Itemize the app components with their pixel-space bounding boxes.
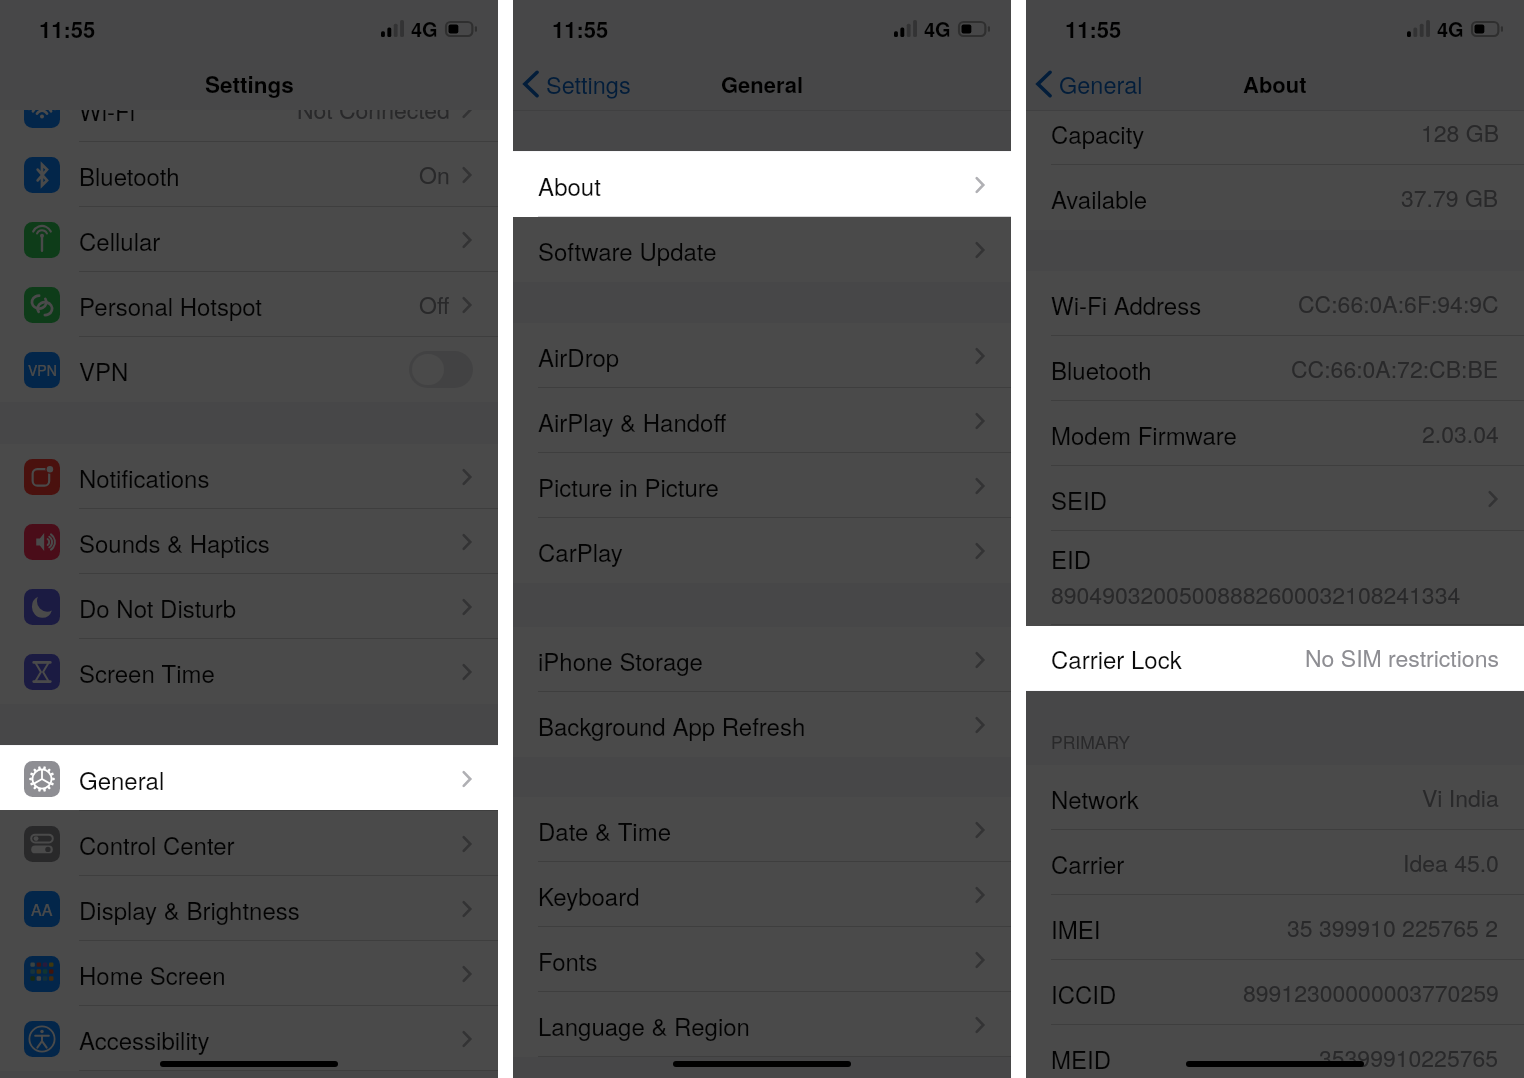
staticText: 37.79 GB [1401,181,1499,214]
staticText: Keyboard [538,878,640,912]
button[interactable]: Date & Time [513,797,1011,862]
staticText: Settings [205,68,294,100]
staticText: EID [1051,541,1092,575]
button[interactable]: SEID [1026,466,1524,531]
staticText: MEID [1051,1041,1111,1075]
staticText: 11:55 [1065,13,1122,45]
button[interactable]: Available [1026,165,1524,230]
staticText: Network [1051,781,1139,815]
staticText: Bluetooth [79,158,180,192]
staticText: Display & Brightness [79,892,300,926]
staticText: Picture in Picture [538,469,719,503]
staticText: CarPlay [538,534,623,568]
staticText: Settings [546,67,631,101]
button[interactable]: VPN [0,337,498,402]
button[interactable]: Capacity [1026,111,1524,165]
staticText: Modem Firmware [1051,417,1237,451]
staticText: 128 GB [1421,116,1499,149]
button[interactable]: Sounds & Haptics [0,509,498,574]
button[interactable]: ICCID [1026,960,1524,1025]
staticText: Do Not Disturb [79,590,237,624]
staticText: Carrier [1051,846,1125,880]
button[interactable]: AA [0,876,498,941]
staticText: CC:66:0A:72:CB:BE [1291,352,1499,385]
button[interactable]: Bluetooth [0,142,498,207]
staticText: AirDrop [538,339,620,373]
button[interactable]: IMEI [1026,895,1524,960]
button[interactable]: Settings [513,63,637,105]
staticText: 35 399910 225765 2 [1287,911,1499,944]
staticText: SEID [1051,482,1108,516]
staticText: Background App Refresh [538,708,806,742]
button[interactable]: iPhone Storage [513,627,1011,692]
button[interactable]: AirDrop [513,323,1011,388]
staticText: Vi India [1422,781,1499,814]
staticText: Home Screen [79,957,226,991]
staticText: Accessibility [79,1022,210,1056]
button[interactable]: Carrier [1026,830,1524,895]
button[interactable]: Personal Hotspot [0,272,498,337]
button[interactable]: Fonts [513,927,1011,992]
staticText: Bluetooth [1051,352,1152,386]
button[interactable]: Language & Region [513,992,1011,1057]
staticText: Not Connected [297,110,450,126]
button[interactable]: AirPlay & Handoff [513,388,1011,453]
staticText: Sounds & Haptics [79,525,270,559]
button[interactable]: Control Center [0,811,498,876]
button[interactable]: Software Update [513,217,1011,282]
staticText: Carrier Lock [1051,641,1182,675]
button[interactable]: Carrier Lock [1026,625,1524,690]
staticText: Software Update [538,233,717,267]
staticText: Idea 45.0 [1403,846,1499,879]
button[interactable]: Toggle VPN [409,351,473,388]
staticText: Screen Time [79,655,215,689]
staticText: Capacity [1051,116,1145,150]
staticText: No SIM restrictions [1305,641,1499,674]
button[interactable]: Home Screen [0,941,498,1006]
staticText: 4G [924,14,951,43]
button[interactable]: Notifications [0,444,498,509]
button[interactable]: Background App Refresh [513,692,1011,757]
button[interactable]: About [513,152,1011,217]
staticText: About [1243,68,1307,100]
staticText: 35399910225765 [1319,1041,1499,1074]
staticText: AirPlay & Handoff [538,404,727,438]
staticText: Wi-Fi Address [1051,287,1202,321]
staticText: Available [1051,181,1148,215]
staticText: VPN [28,360,57,380]
staticText: Control Center [79,827,235,861]
staticText: AA [31,898,53,921]
button[interactable]: General [0,746,498,811]
staticText: Wi-Fi [79,110,135,127]
staticText: ICCID [1051,976,1117,1010]
staticText: 89912300000003770259 [1243,976,1499,1009]
staticText: Off [419,288,450,321]
staticText: Date & Time [538,813,672,847]
staticText: 11:55 [552,13,609,45]
button[interactable]: EID [1026,531,1524,625]
button[interactable]: MEID [1026,1025,1524,1078]
staticText: General [1059,67,1143,101]
staticText: 2.03.04 [1422,417,1499,450]
staticText: 89049032005008882600032108241334 [1051,578,1461,611]
staticText: iPhone Storage [538,643,703,677]
button[interactable]: Do Not Disturb [0,574,498,639]
button[interactable]: Keyboard [513,862,1011,927]
button[interactable]: Accessibility [0,1006,498,1071]
staticText: VPN [79,353,129,387]
button[interactable]: Bluetooth [1026,336,1524,401]
button[interactable]: Network [1026,765,1524,830]
staticText: General [79,762,165,796]
staticText: Notifications [79,460,210,494]
button[interactable]: CarPlay [513,518,1011,583]
button[interactable]: Cellular [0,207,498,272]
button[interactable]: Wi-Fi Address [1026,271,1524,336]
staticText: 11:55 [39,13,96,45]
staticText: 4G [411,14,438,43]
button[interactable]: Picture in Picture [513,453,1011,518]
staticText: Language & Region [538,1008,750,1042]
button[interactable]: Modem Firmware [1026,401,1524,466]
button[interactable]: Screen Time [0,639,498,704]
button[interactable]: Wi-Fi [0,110,498,142]
button[interactable]: General [1026,63,1149,105]
